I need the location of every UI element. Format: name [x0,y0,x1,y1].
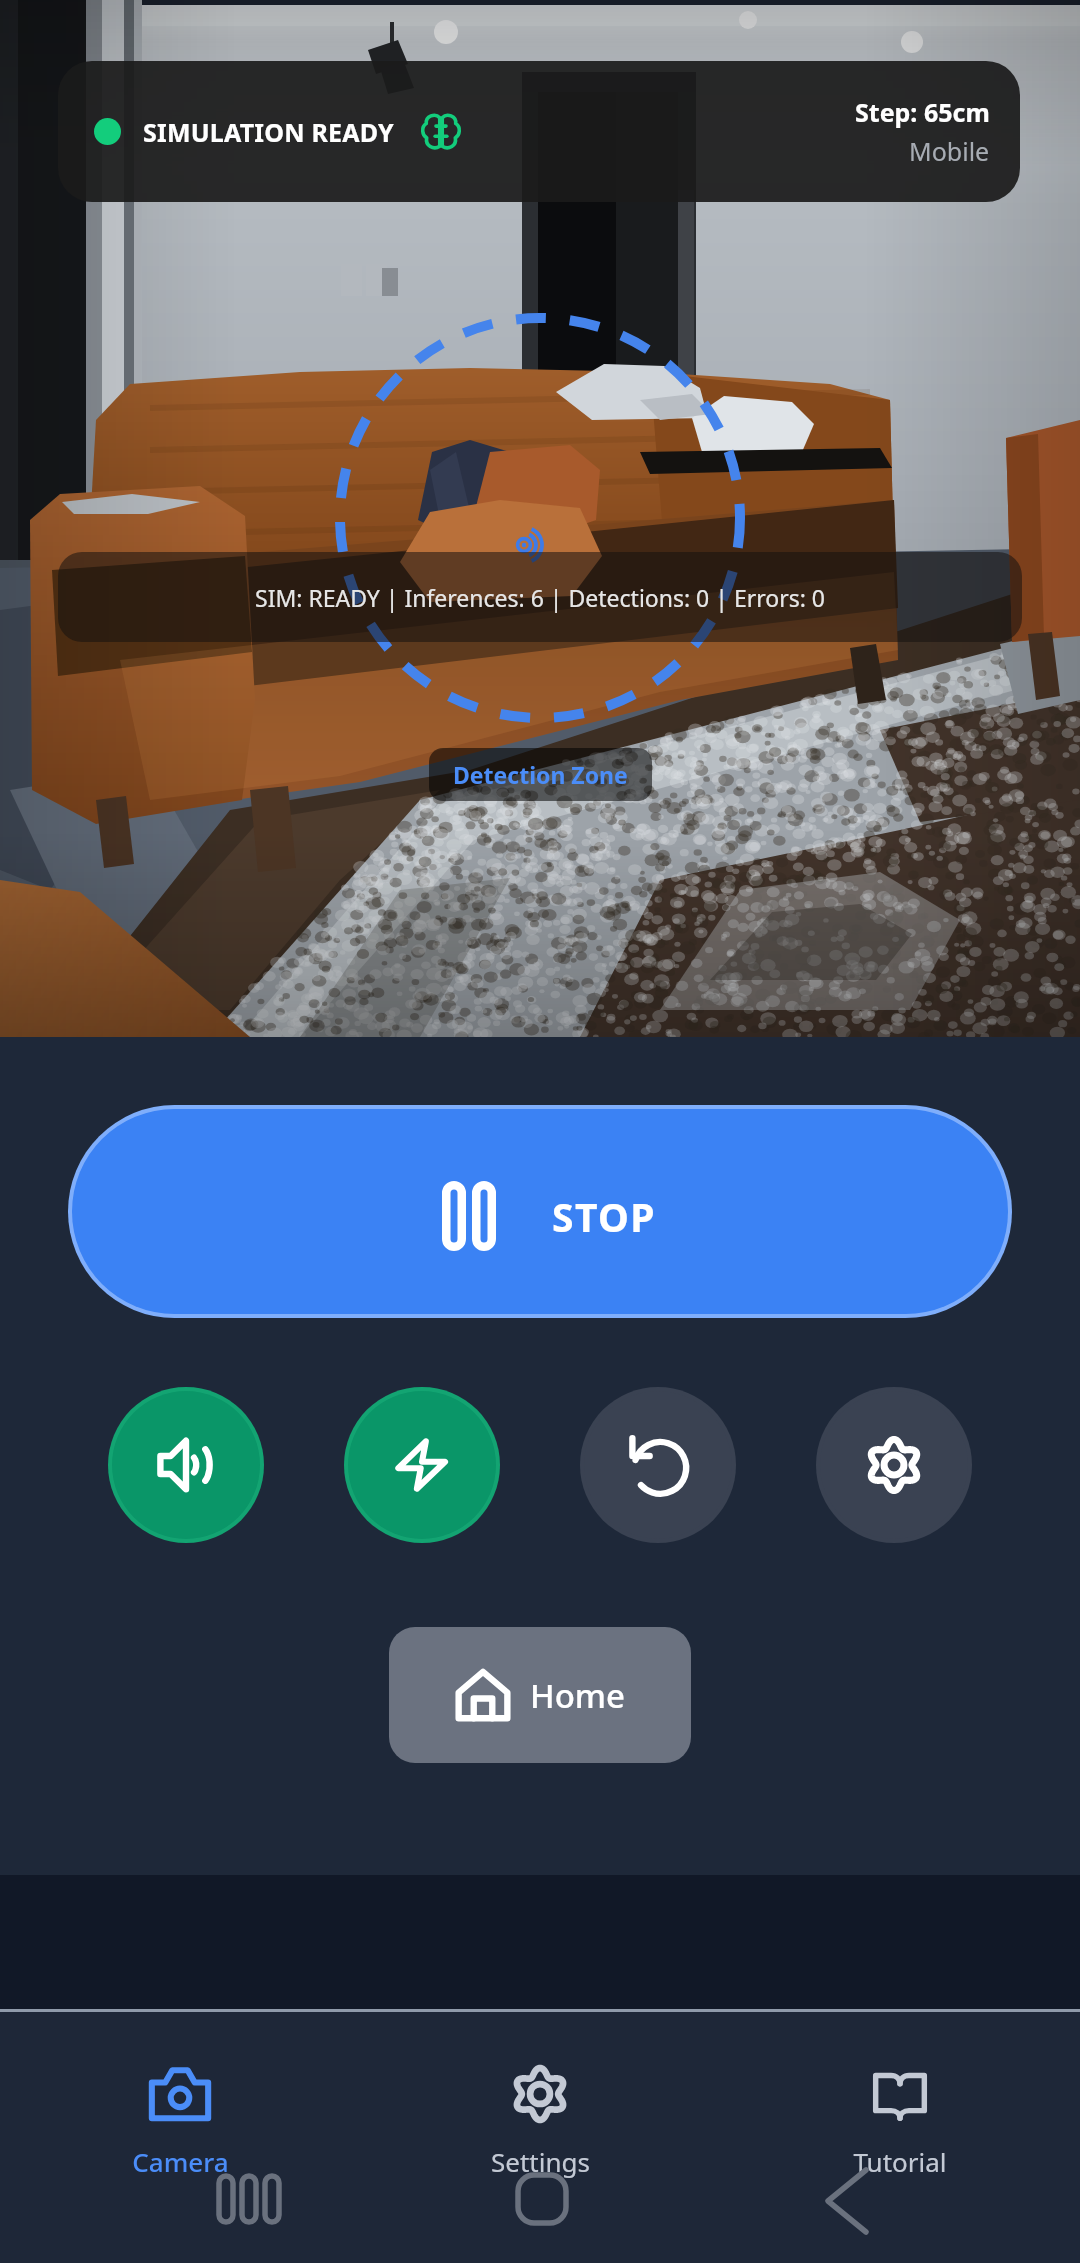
staticText: SIM: READY | Inferences: 6 | Detections:… [255,582,825,613]
staticText: Camera [132,2144,229,2179]
button[interactable]: Settings [360,2012,720,2263]
staticText: Settings [491,2144,590,2179]
staticText: Step: 65cm [855,95,990,129]
button[interactable]: Detection Zone [429,748,652,801]
button[interactable]: Camera [0,2012,360,2263]
button[interactable]: Sound [112,1391,260,1539]
button[interactable]: Vibration [348,1391,496,1539]
staticText: SIMULATION READY [143,115,394,149]
staticText: Home [530,1673,626,1718]
staticText: Tutorial [853,2144,947,2179]
button[interactable]: Settings [820,1391,968,1539]
button[interactable]: SIMULATION READY [58,61,1020,202]
button[interactable]: STOP [72,1109,1008,1314]
staticText: Detection Zone [453,759,628,790]
staticText: STOP [552,1190,656,1243]
button[interactable]: Reset [584,1391,732,1539]
button[interactable]: Home [389,1627,691,1763]
staticText: Mobile [909,134,990,168]
button[interactable]: Tutorial [720,2012,1080,2263]
